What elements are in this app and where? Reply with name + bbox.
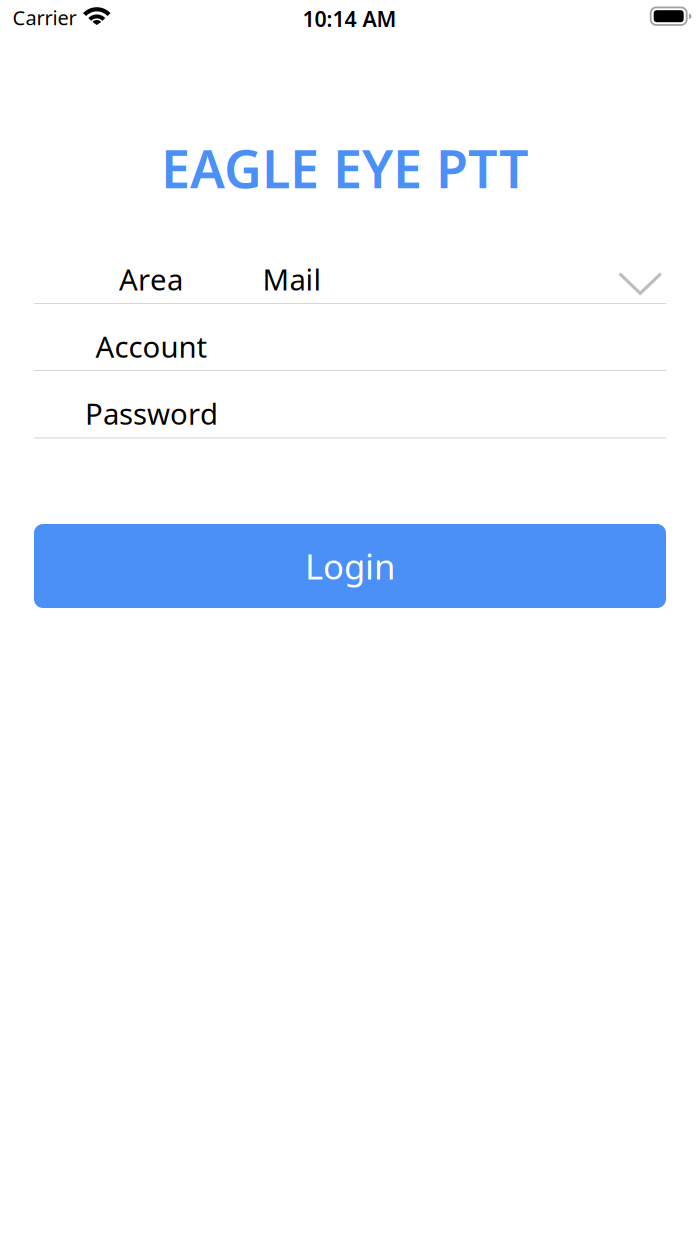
- staticText: Login: [305, 543, 395, 589]
- staticText: 10:14 AM: [302, 4, 396, 33]
- button[interactable]: Area: [0, 237, 700, 304]
- button[interactable]: Login: [34, 524, 666, 608]
- button[interactable]: Password: [0, 371, 700, 438]
- staticText: EAGLE EYE PTT: [161, 133, 529, 203]
- staticText: Area: [119, 259, 183, 298]
- staticText: Password: [85, 394, 218, 433]
- button[interactable]: Account: [0, 304, 700, 371]
- staticText: Carrier: [12, 4, 76, 31]
- staticText: Account: [95, 327, 207, 366]
- staticText: Mail: [262, 259, 321, 298]
